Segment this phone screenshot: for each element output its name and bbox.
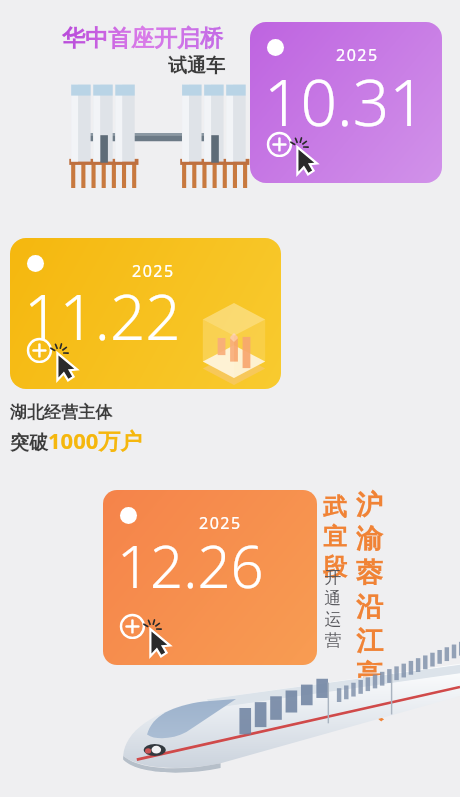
staticText: 运 <box>324 609 342 630</box>
button[interactable]: Add <box>26 337 84 381</box>
staticText: 开 <box>324 567 342 588</box>
staticText: 高 <box>355 658 384 692</box>
button[interactable]: 2025 <box>250 22 442 183</box>
staticText: 铁 <box>355 692 384 726</box>
staticText: 渝 <box>355 522 384 556</box>
staticText: 突破 <box>10 431 48 455</box>
button[interactable]: 2025 <box>10 238 281 389</box>
staticText: 1000万户 <box>48 425 143 455</box>
button[interactable]: 2025 <box>103 490 317 665</box>
staticText: 江 <box>355 624 384 658</box>
staticText: 通 <box>324 588 342 609</box>
button[interactable]: Add <box>119 613 177 657</box>
staticText: 沿 <box>355 590 384 624</box>
staticText: 2025 <box>199 512 242 534</box>
staticText: 2025 <box>336 44 379 66</box>
staticText: 试通车 <box>168 54 225 78</box>
staticText: 2025 <box>132 260 175 282</box>
staticText: 10.31 <box>264 58 426 145</box>
staticText: 11.22 <box>24 274 181 358</box>
staticText: 段 <box>322 552 348 582</box>
staticText: 华中首座开启桥 <box>62 24 223 53</box>
staticText: 湖北经营主体 <box>10 402 112 423</box>
staticText: 营 <box>324 630 342 651</box>
staticText: 武 <box>322 492 348 522</box>
button[interactable]: Add <box>266 131 324 175</box>
staticText: 沪 <box>355 488 384 522</box>
staticText: 宜 <box>322 522 348 552</box>
staticText: 蓉 <box>355 556 384 590</box>
staticText: 12.26 <box>117 526 264 605</box>
